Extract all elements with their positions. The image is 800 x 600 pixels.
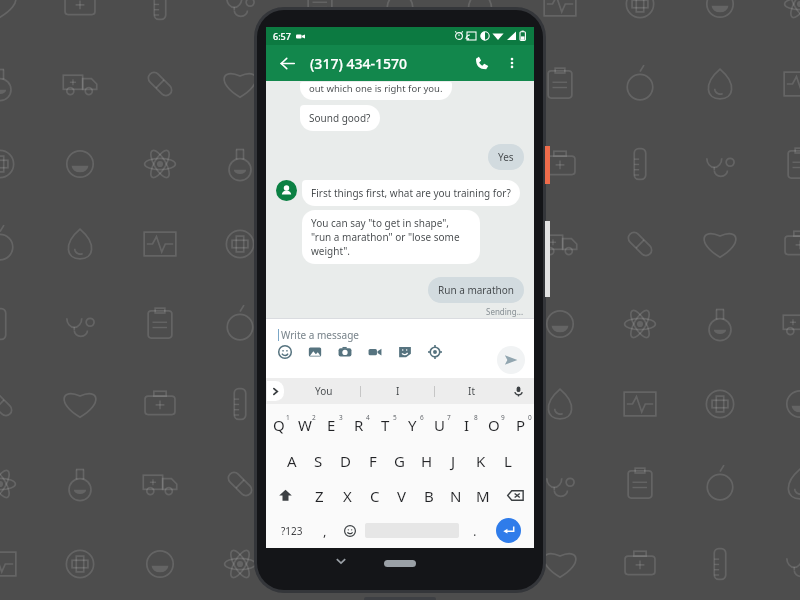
staticText: , bbox=[323, 522, 327, 540]
staticText: D bbox=[340, 451, 351, 471]
staticText: 4 bbox=[366, 413, 370, 422]
staticText: B bbox=[424, 486, 434, 506]
button[interactable]: O bbox=[480, 407, 507, 443]
staticText: Run a marathon bbox=[438, 283, 514, 297]
staticText: Sound good? bbox=[309, 111, 371, 125]
button[interactable]: Sticker bbox=[395, 342, 414, 361]
button[interactable]: M bbox=[469, 478, 496, 513]
button[interactable]: Back bbox=[275, 51, 299, 75]
button[interactable]: K bbox=[467, 443, 494, 478]
staticText: Y bbox=[408, 415, 417, 435]
staticText: H bbox=[421, 451, 433, 471]
button[interactable]: R bbox=[345, 407, 372, 443]
staticText: X bbox=[343, 486, 352, 506]
button[interactable]: T bbox=[372, 407, 399, 443]
button[interactable]: Z bbox=[305, 478, 333, 513]
button[interactable]: N bbox=[442, 478, 469, 513]
button[interactable]: Y bbox=[399, 407, 426, 443]
button[interactable]: E bbox=[318, 407, 345, 443]
button[interactable]: Q bbox=[266, 407, 292, 443]
staticText: C bbox=[370, 486, 380, 506]
staticText: (317) 434-1570 bbox=[310, 54, 407, 73]
button[interactable]: Sound good? bbox=[300, 105, 380, 131]
staticText: T bbox=[381, 415, 390, 435]
staticText: S bbox=[314, 451, 323, 471]
button[interactable]: Enter bbox=[496, 518, 521, 543]
button[interactable]: P bbox=[507, 407, 534, 443]
button[interactable]: S bbox=[305, 443, 332, 478]
staticText: F bbox=[369, 451, 377, 471]
staticText: R bbox=[354, 415, 364, 435]
button[interactable]: D bbox=[332, 443, 359, 478]
staticText: You bbox=[315, 384, 333, 398]
staticText: E bbox=[327, 415, 336, 435]
staticText: 1 bbox=[286, 413, 290, 422]
button[interactable]: I bbox=[453, 407, 480, 443]
staticText: ?123 bbox=[281, 524, 303, 538]
button[interactable]: Camera bbox=[335, 342, 354, 361]
staticText: P bbox=[516, 415, 526, 435]
button[interactable]: Run a marathon bbox=[428, 277, 524, 303]
staticText: O bbox=[488, 415, 500, 435]
button[interactable]: You bbox=[288, 378, 360, 404]
button[interactable]: Backspace bbox=[496, 478, 534, 513]
staticText: Q bbox=[273, 415, 285, 435]
button[interactable]: A bbox=[279, 443, 305, 478]
staticText: 5 bbox=[393, 413, 397, 422]
staticText: 7 bbox=[447, 413, 451, 422]
button[interactable]: V bbox=[388, 478, 415, 513]
staticText: Z bbox=[315, 486, 324, 506]
button[interactable]: F bbox=[359, 443, 386, 478]
button[interactable]: J bbox=[440, 443, 467, 478]
staticText: I bbox=[396, 384, 400, 398]
button[interactable]: G bbox=[386, 443, 413, 478]
staticText: M bbox=[476, 486, 490, 506]
staticText: . bbox=[473, 522, 477, 540]
button[interactable]: Gallery bbox=[305, 342, 324, 361]
staticText: 8 bbox=[474, 413, 478, 422]
staticText: N bbox=[450, 486, 462, 506]
button[interactable]: U bbox=[426, 407, 453, 443]
button[interactable]: X bbox=[333, 478, 361, 513]
button[interactable]: C bbox=[361, 478, 388, 513]
staticText: V bbox=[397, 486, 407, 506]
staticText: A bbox=[287, 451, 297, 471]
button[interactable]: Call bbox=[469, 50, 495, 76]
staticText: W bbox=[298, 415, 312, 435]
button[interactable]: Voice input bbox=[509, 382, 527, 400]
button[interactable]: , bbox=[312, 513, 337, 548]
staticText: L bbox=[504, 451, 512, 471]
staticText: It bbox=[468, 384, 475, 398]
staticText: 3 bbox=[339, 413, 343, 422]
button[interactable]: L bbox=[494, 443, 521, 478]
button[interactable]: You can say "to get in shape", "run a ma… bbox=[302, 210, 480, 264]
button[interactable]: Video bbox=[365, 342, 384, 361]
staticText: U bbox=[434, 415, 445, 435]
button[interactable]: W bbox=[292, 407, 318, 443]
staticText: 6:57 bbox=[273, 30, 291, 42]
button[interactable]: out which one is right for you. bbox=[300, 82, 452, 100]
button[interactable]: I bbox=[361, 378, 434, 404]
button[interactable]: It bbox=[435, 378, 508, 404]
button[interactable]: . bbox=[462, 513, 487, 548]
staticText: I bbox=[464, 415, 470, 435]
button[interactable]: Location bbox=[425, 342, 444, 361]
button[interactable]: Shift bbox=[266, 478, 305, 513]
button[interactable]: B bbox=[415, 478, 442, 513]
button[interactable]: First things first, what are you trainin… bbox=[302, 180, 520, 206]
button[interactable]: H bbox=[413, 443, 440, 478]
button[interactable]: Yes bbox=[488, 144, 524, 170]
button[interactable]: Emoji keyboard bbox=[337, 513, 362, 548]
staticText: Yes bbox=[498, 150, 514, 164]
button[interactable]: ?123 bbox=[271, 513, 312, 548]
staticText: 2 bbox=[312, 413, 316, 422]
staticText: Write a message bbox=[281, 328, 359, 342]
button[interactable]: More options bbox=[499, 50, 525, 76]
staticText: 9 bbox=[501, 413, 505, 422]
staticText: J bbox=[451, 451, 456, 471]
button[interactable]: Expand suggestions bbox=[267, 381, 284, 401]
staticText: 6 bbox=[420, 413, 424, 422]
button[interactable]: Emoji bbox=[275, 342, 294, 361]
button[interactable]: Send bbox=[497, 346, 525, 374]
